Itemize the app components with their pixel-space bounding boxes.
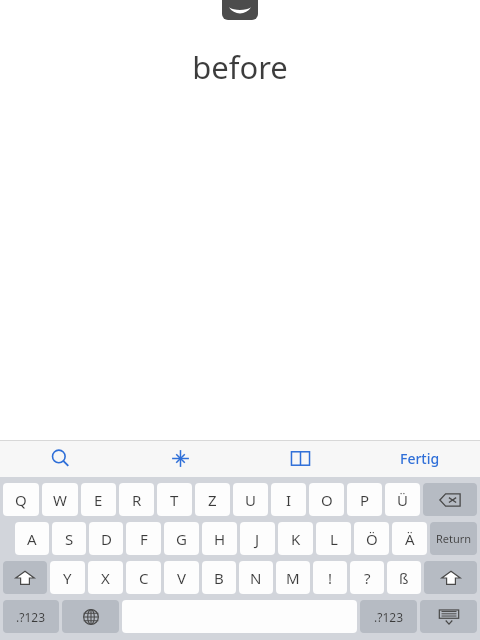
button[interactable]: G	[164, 522, 199, 555]
button[interactable]: U	[233, 483, 268, 516]
button[interactable]: A	[15, 522, 49, 555]
button[interactable]: K	[278, 522, 313, 555]
button[interactable]: Dictionary	[240, 440, 360, 477]
button[interactable]: P	[347, 483, 382, 516]
button[interactable]: .?123	[3, 600, 59, 633]
button[interactable]: I	[271, 483, 306, 516]
button[interactable]: Shift	[424, 561, 477, 594]
staticText: L	[330, 529, 338, 549]
staticText: before	[192, 46, 288, 88]
button[interactable]: Shift	[3, 561, 47, 594]
staticText: G	[176, 529, 187, 549]
button[interactable]: R	[119, 483, 154, 516]
staticText: ß	[399, 568, 409, 588]
button[interactable]: Change language	[62, 600, 119, 633]
button[interactable]: O	[309, 483, 344, 516]
staticText: R	[132, 490, 142, 510]
button[interactable]: W	[42, 483, 78, 516]
button[interactable]: Search	[0, 440, 120, 477]
staticText: P	[360, 490, 370, 510]
staticText: O	[321, 490, 333, 510]
staticText: U	[245, 490, 256, 510]
staticText: .?123	[374, 609, 404, 625]
button[interactable]: Q	[3, 483, 39, 516]
staticText: Ü	[397, 490, 408, 510]
staticText: C	[139, 568, 149, 588]
button[interactable]: Ü	[385, 483, 420, 516]
button[interactable]: N	[239, 561, 273, 594]
button[interactable]: Return	[430, 522, 477, 555]
staticText: ?	[364, 568, 371, 588]
button[interactable]: Suggestions	[120, 440, 240, 477]
button[interactable]: B	[202, 561, 236, 594]
button[interactable]: .?123	[360, 600, 417, 633]
button[interactable]: ?	[350, 561, 384, 594]
staticText: K	[291, 529, 301, 549]
button[interactable]: S	[52, 522, 86, 555]
button[interactable]: Ä	[392, 522, 427, 555]
staticText: A	[27, 529, 37, 549]
button[interactable]: Fertig	[360, 440, 480, 477]
button[interactable]: T	[157, 483, 192, 516]
button[interactable]: E	[81, 483, 116, 516]
staticText: B	[214, 568, 224, 588]
staticText: Ö	[366, 529, 378, 549]
staticText: !	[328, 568, 333, 588]
button[interactable]: M	[276, 561, 310, 594]
button[interactable]: App icon	[222, 0, 258, 20]
staticText: N	[250, 568, 262, 588]
staticText: Q	[15, 490, 27, 510]
button[interactable]: D	[89, 522, 123, 555]
staticText: H	[214, 529, 226, 549]
staticText: E	[94, 490, 103, 510]
staticText: Y	[63, 568, 72, 588]
staticText: W	[53, 490, 67, 510]
staticText: .?123	[16, 609, 46, 625]
button[interactable]: Backspace	[423, 483, 477, 516]
button[interactable]: F	[126, 522, 161, 555]
button[interactable]: Z	[195, 483, 230, 516]
staticText: T	[170, 490, 179, 510]
staticText: V	[177, 568, 187, 588]
staticText: I	[286, 490, 292, 510]
button[interactable]: L	[316, 522, 351, 555]
button[interactable]: Ö	[354, 522, 389, 555]
staticText: Z	[208, 490, 217, 510]
staticText: J	[255, 529, 260, 549]
staticText: Ä	[405, 529, 415, 549]
staticText: Fertig	[400, 449, 440, 468]
staticText: M	[286, 568, 300, 588]
staticText: S	[65, 529, 74, 549]
staticText: X	[101, 568, 110, 588]
staticText: D	[101, 529, 112, 549]
staticText: Return	[436, 531, 472, 546]
button[interactable]: Y	[50, 561, 85, 594]
button[interactable]: H	[202, 522, 237, 555]
button[interactable]: C	[126, 561, 161, 594]
button[interactable]: ß	[387, 561, 421, 594]
button[interactable]: J	[240, 522, 275, 555]
staticText: F	[140, 529, 148, 549]
button[interactable]: X	[88, 561, 123, 594]
button[interactable]: !	[313, 561, 347, 594]
button[interactable]: Hide keyboard	[420, 600, 477, 633]
button[interactable]: V	[164, 561, 199, 594]
